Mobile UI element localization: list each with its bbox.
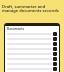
button[interactable]	[7, 67, 57, 71]
button[interactable]	[7, 62, 57, 66]
button[interactable]	[7, 37, 57, 41]
button[interactable]	[7, 57, 57, 61]
staticText: Draft, summarize and manage documents se…	[2, 4, 62, 14]
button[interactable]	[7, 32, 57, 36]
staticText: Documents	[7, 27, 25, 31]
button[interactable]	[7, 52, 57, 56]
button[interactable]	[7, 42, 57, 46]
button[interactable]	[7, 47, 57, 51]
